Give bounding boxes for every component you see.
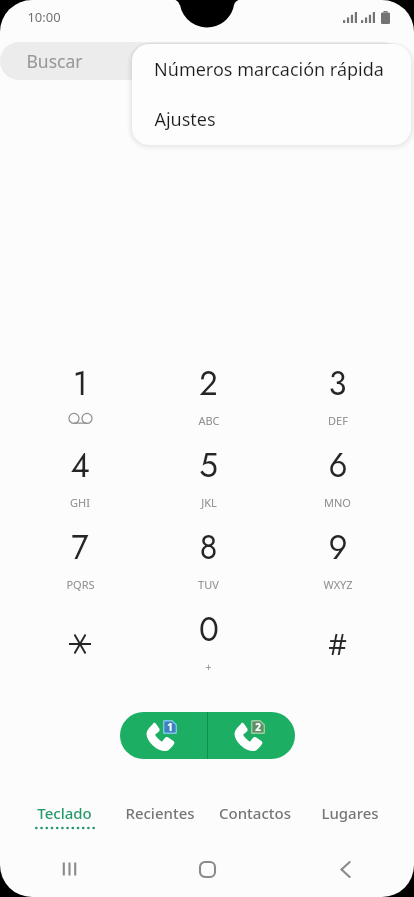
- button[interactable]: Teclado: [17, 798, 112, 838]
- button[interactable]: 8: [144, 519, 273, 601]
- staticText: 3: [328, 360, 347, 408]
- staticText: ABC: [198, 413, 220, 428]
- button[interactable]: Llamar con SIM 1: [120, 712, 207, 759]
- staticText: 5: [199, 442, 218, 490]
- button[interactable]: 1: [16, 355, 144, 437]
- staticText: 6: [328, 442, 348, 490]
- staticText: MNO: [324, 495, 351, 510]
- button[interactable]: Contactos: [207, 798, 302, 838]
- button[interactable]: 6: [273, 437, 402, 519]
- staticText: JKL: [201, 495, 217, 510]
- staticText: Ajustes: [154, 107, 216, 132]
- button[interactable]: Asterisco: [16, 601, 144, 683]
- staticText: 10:00: [27, 8, 61, 26]
- staticText: TUV: [198, 577, 219, 592]
- staticText: 4: [70, 442, 90, 490]
- staticText: 7: [71, 524, 89, 572]
- staticText: Lugares: [321, 803, 379, 823]
- staticText: 2: [199, 360, 218, 408]
- button[interactable]: Llamar con SIM 2: [208, 712, 295, 759]
- staticText: Números marcación rápida: [154, 57, 384, 82]
- button[interactable]: 4: [16, 437, 144, 519]
- staticText: Recientes: [125, 803, 195, 823]
- staticText: DEF: [328, 413, 348, 428]
- staticText: #: [328, 624, 347, 663]
- button[interactable]: Inicio: [138, 841, 276, 897]
- button[interactable]: Almohadilla: [273, 601, 402, 683]
- staticText: 0: [199, 606, 219, 654]
- button[interactable]: 7: [16, 519, 144, 601]
- staticText: PQRS: [66, 577, 95, 592]
- staticText: 1: [167, 720, 173, 734]
- button[interactable]: 5: [144, 437, 273, 519]
- staticText: WXYZ: [323, 577, 353, 592]
- button[interactable]: Buscar: [0, 42, 402, 80]
- button[interactable]: Números marcación rápida: [132, 44, 411, 94]
- staticText: 1: [73, 360, 88, 408]
- button[interactable]: Ajustes: [132, 94, 411, 145]
- staticText: 8: [199, 524, 218, 572]
- button[interactable]: 3: [273, 355, 402, 437]
- staticText: Teclado: [37, 803, 92, 823]
- button[interactable]: Recientes: [112, 798, 207, 838]
- staticText: +: [205, 659, 212, 674]
- button[interactable]: Atrás: [276, 841, 414, 897]
- staticText: Contactos: [219, 803, 291, 823]
- button[interactable]: Lugares: [302, 798, 397, 838]
- button[interactable]: 9: [273, 519, 402, 601]
- button[interactable]: 0: [144, 601, 273, 683]
- staticText: 9: [328, 524, 348, 572]
- staticText: 2: [255, 720, 261, 734]
- staticText: Buscar: [26, 49, 83, 73]
- staticText: GHI: [70, 495, 90, 510]
- button[interactable]: 2: [144, 355, 273, 437]
- button[interactable]: Recientes: [0, 841, 138, 897]
